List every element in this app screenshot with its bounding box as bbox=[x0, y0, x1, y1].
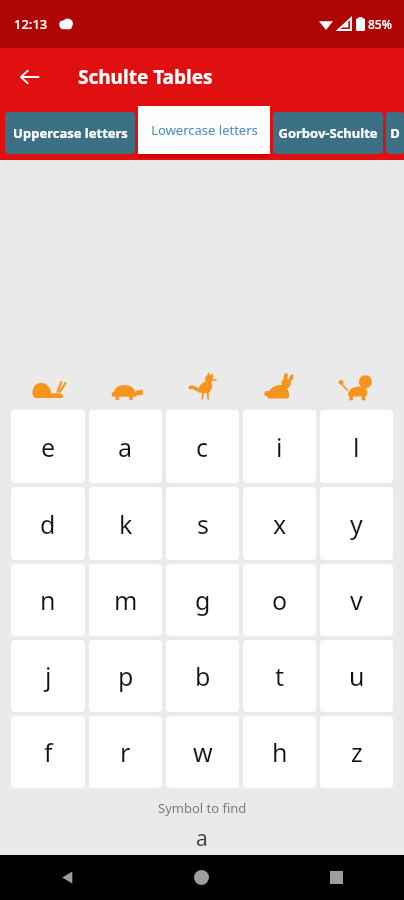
button[interactable]: t bbox=[243, 640, 316, 712]
button[interactable]: v bbox=[320, 564, 393, 636]
staticText: f bbox=[44, 735, 53, 769]
button[interactable]: h bbox=[243, 716, 316, 788]
button[interactable]: j bbox=[11, 640, 85, 712]
button[interactable]: l bbox=[320, 410, 393, 483]
staticText: l bbox=[353, 430, 360, 464]
button[interactable]: c bbox=[166, 410, 239, 483]
staticText: Symbol to find bbox=[158, 799, 247, 817]
staticText: h bbox=[272, 735, 288, 769]
button[interactable]: a bbox=[89, 410, 162, 483]
staticText: 12:13 bbox=[14, 15, 48, 33]
staticText: t bbox=[275, 659, 285, 693]
staticText: m bbox=[114, 583, 138, 617]
staticText: Schulte Tables bbox=[78, 64, 213, 90]
button[interactable]: Back bbox=[0, 855, 134, 900]
staticText: n bbox=[40, 583, 56, 617]
button[interactable]: f bbox=[11, 716, 85, 788]
staticText: p bbox=[118, 659, 134, 693]
staticText: r bbox=[120, 735, 131, 769]
button[interactable]: u bbox=[320, 640, 393, 712]
staticText: d bbox=[40, 507, 56, 541]
staticText: x bbox=[273, 507, 287, 541]
button[interactable]: Back bbox=[6, 53, 54, 101]
staticText: Uppercase letters bbox=[13, 124, 128, 142]
button[interactable]: D bbox=[386, 112, 404, 154]
button[interactable]: s bbox=[166, 487, 239, 560]
staticText: a bbox=[118, 430, 133, 464]
staticText: D bbox=[390, 124, 400, 142]
button[interactable]: b bbox=[166, 640, 239, 712]
button[interactable]: o bbox=[243, 564, 316, 636]
button[interactable]: Gorbov-Schulte bbox=[273, 112, 383, 154]
staticText: Lowercase letters bbox=[151, 121, 258, 139]
button[interactable]: Lowercase letters bbox=[138, 106, 270, 160]
staticText: c bbox=[196, 430, 209, 464]
button[interactable]: m bbox=[89, 564, 162, 636]
staticText: 85% bbox=[368, 16, 392, 32]
button[interactable]: y bbox=[320, 487, 393, 560]
staticText: w bbox=[193, 735, 213, 769]
button[interactable]: x bbox=[243, 487, 316, 560]
button[interactable]: r bbox=[89, 716, 162, 788]
button[interactable]: g bbox=[166, 564, 239, 636]
staticText: y bbox=[350, 507, 363, 541]
staticText: g bbox=[195, 583, 211, 617]
button[interactable]: d bbox=[11, 487, 85, 560]
button[interactable]: i bbox=[243, 410, 316, 483]
button[interactable]: Uppercase letters bbox=[5, 112, 135, 154]
button[interactable]: k bbox=[89, 487, 162, 560]
button[interactable]: z bbox=[320, 716, 393, 788]
staticText: e bbox=[41, 430, 56, 464]
staticText: a bbox=[196, 824, 208, 853]
staticText: s bbox=[197, 507, 209, 541]
staticText: v bbox=[350, 583, 363, 617]
staticText: z bbox=[351, 735, 363, 769]
staticText: b bbox=[195, 659, 211, 693]
staticText: u bbox=[349, 659, 365, 693]
button[interactable]: e bbox=[11, 410, 85, 483]
button[interactable]: n bbox=[11, 564, 85, 636]
button[interactable]: Recent apps bbox=[269, 855, 404, 900]
staticText: k bbox=[119, 507, 133, 541]
staticText: Gorbov-Schulte bbox=[278, 124, 378, 142]
button[interactable]: Home bbox=[134, 855, 269, 900]
staticText: i bbox=[276, 430, 283, 464]
button[interactable]: p bbox=[89, 640, 162, 712]
staticText: o bbox=[272, 583, 288, 617]
staticText: j bbox=[45, 659, 52, 693]
button[interactable]: w bbox=[166, 716, 239, 788]
